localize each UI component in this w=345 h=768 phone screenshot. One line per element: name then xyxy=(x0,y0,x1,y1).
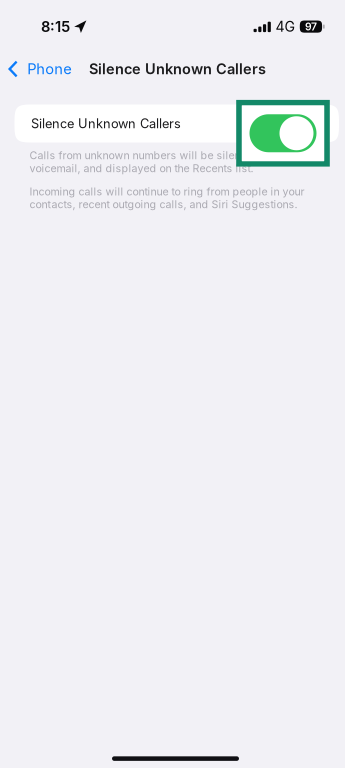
staticText: Silence Unknown Callers xyxy=(89,60,266,78)
staticText: Calls from unknown numbers will be silen… xyxy=(29,149,298,175)
staticText: Phone xyxy=(27,60,72,78)
staticText: Silence Unknown Callers xyxy=(31,116,181,131)
button[interactable]: Phone xyxy=(0,56,92,82)
staticText: Incoming calls will continue to ring fro… xyxy=(29,185,304,211)
button[interactable]: Silence Unknown Callers xyxy=(14,104,339,142)
staticText: 97 xyxy=(305,20,317,33)
button[interactable]: Silence Unknown Callers xyxy=(236,100,330,167)
staticText: 4G xyxy=(275,18,295,35)
staticText: 8:15 xyxy=(41,18,70,35)
